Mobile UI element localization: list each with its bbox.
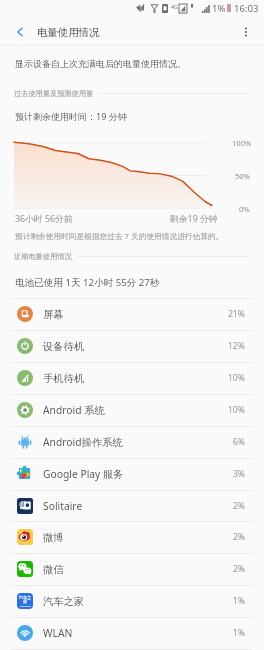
staticText: WLAN: [43, 626, 73, 640]
staticText: 1%: [212, 2, 226, 15]
staticText: 100%: [232, 138, 252, 148]
staticText: 10%: [228, 372, 245, 384]
staticText: 屏幕: [43, 308, 64, 321]
staticText: 显示设备自上次充满电后的电量使用情况。: [15, 58, 186, 69]
button[interactable]: 微信: [0, 553, 264, 585]
staticText: 36小时 56分前: [15, 213, 73, 225]
button[interactable]: Back: [6, 18, 34, 46]
staticText: 手机待机: [43, 372, 85, 385]
staticText: Google Play 服务: [43, 467, 124, 481]
staticText: 汽车之家: [17, 595, 33, 605]
button[interactable]: Android 系统: [0, 394, 264, 426]
staticText: 4G: [171, 3, 178, 10]
staticText: 2%: [233, 563, 245, 575]
staticText: 21%: [228, 308, 245, 320]
staticText: 1%: [233, 595, 245, 607]
staticText: Android操作系统: [43, 435, 123, 449]
staticText: Android 系统: [43, 403, 105, 417]
staticText: 微信: [43, 563, 64, 576]
button[interactable]: 手机待机: [0, 362, 264, 394]
staticText: 设备待机: [43, 340, 85, 353]
button[interactable]: 屏幕: [0, 298, 264, 330]
staticText: 0%: [239, 204, 250, 214]
staticText: 10%: [228, 404, 245, 416]
staticText: 预计剩余使用时间是根据您过去 7 天的使用情况进行估算的。: [15, 231, 224, 242]
button[interactable]: WLAN: [0, 617, 264, 649]
staticText: 3%: [233, 468, 245, 480]
staticText: 汽车之家: [43, 595, 85, 608]
button[interactable]: 设备待机: [0, 330, 264, 362]
button[interactable]: Google Play 服务: [0, 458, 264, 490]
button[interactable]: More options: [232, 18, 260, 46]
staticText: 16:03: [234, 2, 259, 15]
staticText: Solitaire: [43, 499, 83, 513]
staticText: 50%: [235, 171, 250, 181]
button[interactable]: 微博: [0, 521, 264, 553]
staticText: 剩余19 分钟: [170, 213, 218, 225]
staticText: 预计剩余使用时间：19 分钟: [15, 110, 127, 122]
button[interactable]: 汽车之家: [0, 585, 264, 617]
staticText: 12%: [228, 340, 245, 352]
staticText: 过去使用量及预测使用量: [14, 89, 94, 98]
staticText: 2%: [233, 531, 245, 543]
staticText: 微博: [43, 531, 64, 544]
staticText: 6%: [233, 436, 245, 448]
staticText: 电池已使用 1天 12小时 55分 27秒: [15, 276, 160, 289]
staticText: 1%: [233, 627, 245, 639]
button[interactable]: Android操作系统: [0, 426, 264, 458]
staticText: 电量使用情况: [37, 26, 100, 39]
staticText: 近期电量使用情况: [14, 252, 72, 261]
staticText: 2%: [233, 500, 245, 512]
button[interactable]: Solitaire: [0, 490, 264, 522]
